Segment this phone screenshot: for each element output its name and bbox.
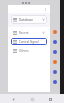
button[interactable]: Contact avatar bbox=[53, 40, 57, 44]
button[interactable]: Contact avatar bbox=[53, 50, 57, 54]
button[interactable]: Back bbox=[9, 95, 18, 103]
staticText: Recent bbox=[19, 31, 29, 35]
button[interactable]: Home bbox=[28, 95, 37, 103]
button[interactable]: Recent bbox=[11, 29, 47, 36]
button[interactable]: Contact avatar bbox=[53, 70, 57, 74]
button[interactable]: Central Signal Normalisering bbox=[11, 38, 47, 45]
button[interactable]: Database bbox=[11, 15, 47, 24]
button[interactable]: More options bbox=[43, 7, 47, 11]
button[interactable]: Others bbox=[11, 47, 47, 54]
button[interactable]: Recent apps bbox=[46, 95, 55, 103]
button[interactable]: Contact avatar bbox=[53, 60, 57, 64]
button[interactable]: Contact avatar bbox=[53, 30, 57, 34]
staticText: Central Signal Normalisering bbox=[19, 40, 45, 44]
staticText: Others bbox=[19, 49, 29, 53]
staticText: Database bbox=[19, 18, 34, 22]
button[interactable]: Contact avatar bbox=[53, 80, 57, 84]
